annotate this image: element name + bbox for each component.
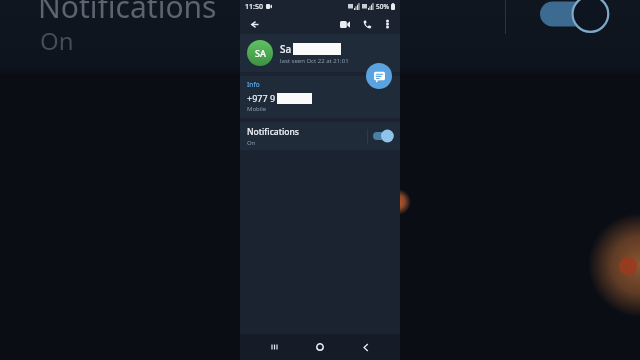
staticText: SA [255, 47, 266, 59]
staticText: Sa [280, 42, 292, 56]
button[interactable]: More options [380, 17, 394, 31]
button[interactable]: Call [359, 16, 375, 32]
staticText: On [40, 24, 74, 57]
button[interactable]: Video call [337, 16, 353, 32]
button[interactable]: SA [240, 34, 400, 72]
button[interactable]: Home [309, 336, 331, 358]
staticText: +977 9 [247, 92, 276, 104]
button[interactable]: Recent apps [264, 336, 286, 358]
staticText: On [247, 139, 256, 147]
button[interactable]: Send message [366, 63, 392, 89]
button[interactable]: Notifications toggle [373, 129, 393, 143]
staticText: Notifications [38, 0, 217, 22]
staticText: 50% [376, 2, 389, 11]
staticText: Info [247, 80, 260, 89]
button[interactable]: Back [355, 336, 377, 358]
button[interactable]: Notifications [240, 122, 400, 150]
staticText: Mobile [247, 105, 267, 113]
button[interactable]: +977 9 [247, 92, 393, 104]
staticText: last seen Oct 22 at 21:01 [280, 57, 349, 65]
button[interactable]: Back [246, 16, 262, 32]
staticText: Notifications [247, 126, 299, 138]
staticText: 11:50 [245, 2, 263, 12]
